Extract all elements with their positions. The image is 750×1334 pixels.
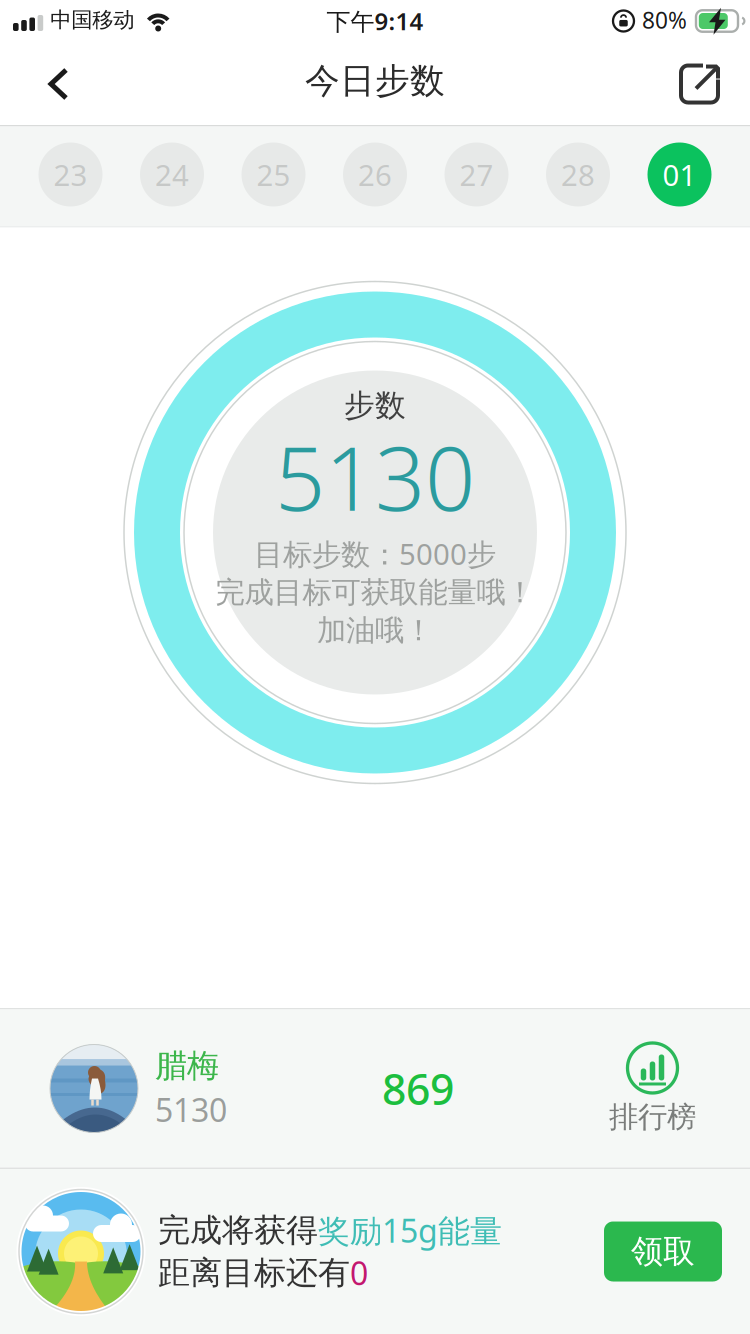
staticText: 5130 [275, 418, 475, 535]
staticText: 目标步数：5000步 [254, 534, 496, 573]
button[interactable]: Day 25 [241, 142, 305, 206]
staticText: 距离目标还有 [158, 1253, 350, 1292]
button[interactable]: Back [0, 40, 69, 124]
button[interactable]: Day 27 [444, 142, 508, 206]
staticText: 80% [642, 5, 687, 35]
button[interactable]: Day 23 [38, 142, 102, 206]
staticText: 奖励15g能量 [318, 1209, 502, 1251]
staticText: 01 [662, 155, 696, 194]
button[interactable]: 排行榜 [609, 1042, 750, 1135]
staticText: 今日步数 [305, 60, 445, 102]
staticText: 完成将获得 [158, 1211, 318, 1250]
staticText: 领取 [631, 1232, 695, 1271]
staticText: 排行榜 [609, 1099, 696, 1135]
button[interactable]: Day 24 [140, 142, 204, 206]
staticText: 25 [256, 155, 290, 194]
staticText: 下午9:14 [326, 5, 423, 37]
staticText: 27 [459, 155, 493, 194]
button[interactable]: Share [678, 39, 750, 126]
staticText: 26 [358, 155, 392, 194]
staticText: 869 [382, 1060, 454, 1117]
staticText: 28 [561, 155, 595, 194]
button[interactable]: Day 26 [343, 142, 407, 206]
button[interactable]: Day 28 [546, 142, 610, 206]
button[interactable]: Day 01 [647, 142, 711, 206]
staticText: 腊梅 [155, 1046, 219, 1085]
staticText: 完成目标可获取能量哦！ [215, 574, 534, 610]
staticText: 加油哦！ [317, 612, 433, 648]
staticText: 0 [350, 1251, 368, 1294]
staticText: 步数 [344, 387, 406, 424]
staticText: 5130 [155, 1088, 227, 1131]
button[interactable]: 腊梅 profile [0, 1044, 227, 1132]
staticText: 23 [53, 155, 87, 194]
staticText: 中国移动 [50, 7, 134, 33]
button[interactable]: 领取 [604, 1221, 722, 1281]
staticText: 24 [155, 155, 189, 194]
